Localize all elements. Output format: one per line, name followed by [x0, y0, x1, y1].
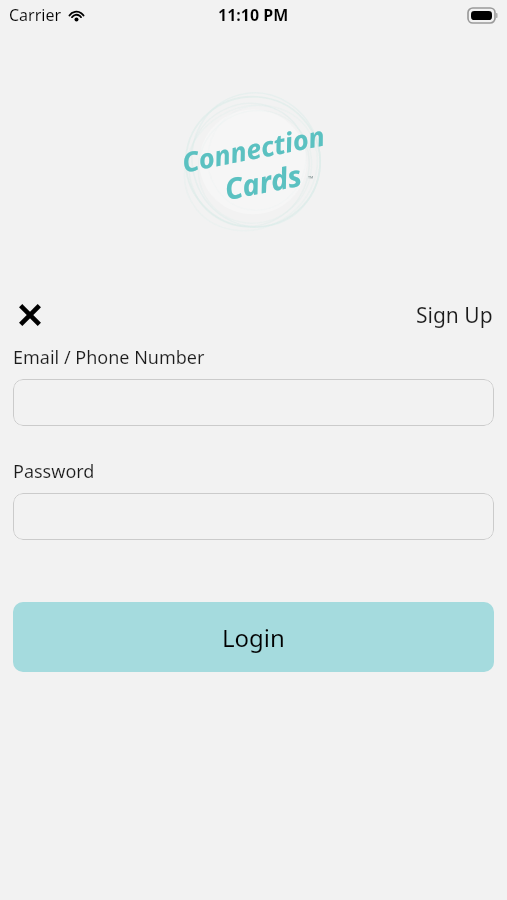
- button[interactable]: Close: [9, 294, 51, 336]
- staticText: Password: [13, 459, 95, 484]
- staticText: Cards: [221, 155, 305, 208]
- staticText: Login: [222, 621, 285, 654]
- staticText: ™: [308, 174, 314, 184]
- staticText: Carrier: [9, 4, 62, 26]
- staticText: Sign Up: [416, 301, 493, 330]
- staticText: Connection: [179, 116, 328, 180]
- button[interactable]: Login: [13, 602, 494, 672]
- staticText: Email / Phone Number: [13, 345, 205, 370]
- button[interactable]: Sign Up: [402, 295, 507, 336]
- staticText: 11:10 PM: [218, 4, 289, 26]
- button[interactable]: [13, 493, 494, 540]
- button[interactable]: [13, 379, 494, 426]
